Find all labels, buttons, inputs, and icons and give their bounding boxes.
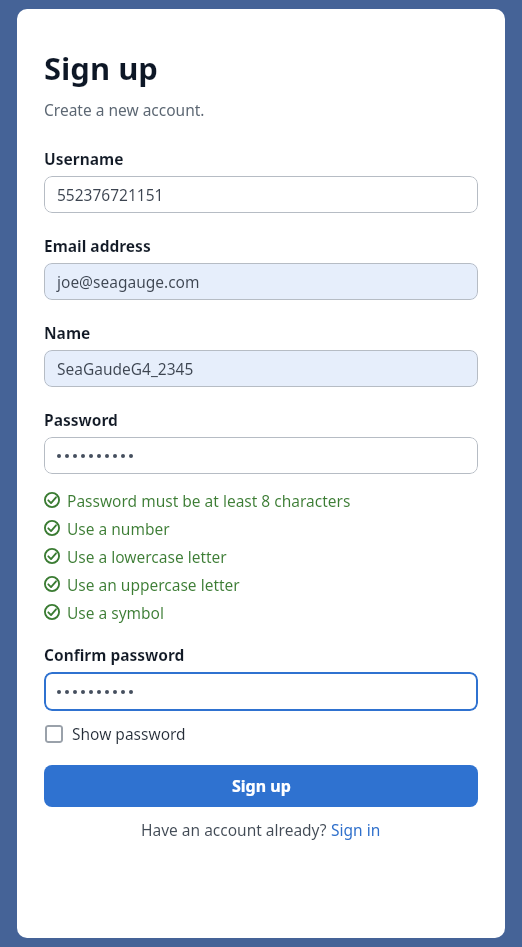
staticText: Sign up [232,775,291,797]
staticText: Have an account already? [141,819,331,840]
staticText: SeaGaudeG4_2345 [57,358,194,379]
button[interactable]: Sign up [44,765,478,807]
button[interactable]: joe@seagauge.com [44,263,478,300]
button[interactable]: SeaGaudeG4_2345 [44,350,478,387]
staticText: Create a new account. [44,99,205,120]
staticText: Use an uppercase letter [67,574,240,595]
button[interactable] [44,672,478,711]
staticText: Show password [72,723,186,744]
staticText: Name [44,322,91,343]
staticText: Username [44,148,124,169]
staticText: Email address [44,235,151,256]
staticText: Password must be at least 8 characters [67,490,351,511]
staticText: 552376721151 [57,184,164,205]
staticText: Use a lowercase letter [67,546,227,567]
staticText: Confirm password [44,644,185,665]
staticText: joe@seagauge.com [57,271,200,292]
staticText: Use a symbol [67,602,164,623]
staticText: Use a number [67,518,170,539]
staticText: Password [44,409,118,430]
button[interactable]: Sign in [331,819,381,840]
button[interactable] [44,437,478,474]
staticText: Sign up [44,47,158,89]
button[interactable]: Show password [44,720,187,747]
staticText: Sign in [331,819,381,840]
button[interactable]: 552376721151 [44,176,478,213]
